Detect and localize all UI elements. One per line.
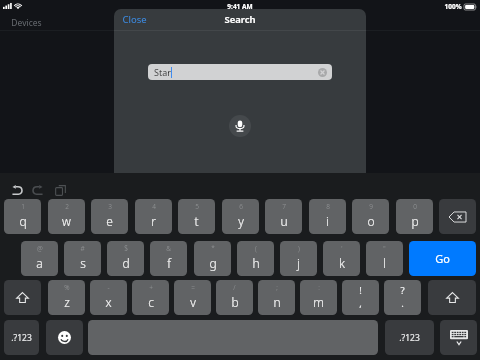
button[interactable]: ; (258, 280, 295, 315)
staticText: .?123 (11, 332, 32, 344)
button[interactable]: 5 (178, 199, 215, 234)
button[interactable]: + (132, 280, 169, 315)
staticText: l (383, 255, 386, 271)
button[interactable]: $ (107, 241, 144, 276)
button[interactable]: ' (323, 241, 360, 276)
staticText: Star (154, 66, 171, 78)
staticText: .?123 (399, 332, 420, 344)
button[interactable]: 4 (135, 199, 172, 234)
staticText: . (401, 297, 404, 310)
button[interactable]: * (194, 241, 231, 276)
staticText: ; (276, 283, 278, 292)
staticText: 4 (152, 202, 156, 211)
button[interactable]: Paste (50, 182, 70, 198)
staticText: n (273, 294, 281, 310)
staticText: 1 (21, 202, 25, 211)
staticText: o (367, 213, 375, 229)
button[interactable]: 6 (222, 199, 259, 234)
staticText: ? (400, 284, 405, 297)
button[interactable]: .?123 (4, 320, 39, 355)
staticText: a (36, 255, 43, 271)
button[interactable]: ) (280, 241, 317, 276)
button[interactable]: : (300, 280, 337, 315)
staticText: u (280, 213, 288, 229)
staticText: 8 (326, 202, 330, 211)
staticText: 0 (413, 202, 417, 211)
staticText: " (383, 244, 386, 253)
staticText: 6 (239, 202, 243, 211)
staticText: Close (122, 13, 147, 26)
button[interactable]: / (216, 280, 253, 315)
staticText: 3 (108, 202, 112, 211)
button[interactable]: Close (114, 10, 155, 29)
button[interactable]: 0 (396, 199, 433, 234)
staticText: @ (37, 244, 43, 253)
staticText: ' (341, 244, 343, 253)
button[interactable]: 3 (91, 199, 128, 234)
button[interactable]: Shift right (428, 280, 476, 315)
staticText: t (194, 213, 199, 229)
button[interactable]: @ (21, 241, 58, 276)
staticText: w (62, 213, 71, 229)
staticText: q (19, 213, 27, 229)
staticText: g (209, 255, 217, 271)
staticText: , (359, 297, 362, 310)
button[interactable]: ( (237, 241, 274, 276)
button[interactable]: ? (384, 280, 421, 315)
staticText: 7 (282, 202, 286, 211)
button[interactable]: Undo (7, 182, 27, 198)
staticText: m (313, 294, 324, 310)
staticText: 9:41 AM (227, 2, 253, 11)
staticText: - (107, 283, 110, 292)
staticText: Search (224, 13, 256, 26)
staticText: j (297, 255, 300, 271)
staticText: v (190, 294, 196, 310)
staticText: h (252, 255, 260, 271)
staticText: * (211, 244, 215, 253)
button[interactable]: Go (409, 241, 476, 276)
staticText: k (339, 255, 345, 271)
button[interactable]: Dictate (229, 115, 251, 137)
staticText: f (167, 255, 171, 271)
staticText: & (166, 244, 171, 253)
button[interactable]: " (366, 241, 403, 276)
button[interactable]: Star (148, 64, 332, 80)
staticText: ) (298, 244, 300, 253)
staticText: + (149, 283, 153, 292)
button[interactable]: - (90, 280, 127, 315)
staticText: x (105, 294, 112, 310)
button[interactable]: 9 (352, 199, 389, 234)
staticText: $ (124, 244, 128, 253)
button[interactable]: & (150, 241, 187, 276)
button[interactable]: # (64, 241, 101, 276)
staticText: e (106, 213, 113, 229)
staticText: 5 (195, 202, 199, 211)
staticText: Devices (11, 17, 42, 29)
button[interactable]: 8 (309, 199, 346, 234)
staticText: z (64, 294, 70, 310)
button[interactable]: = (174, 280, 211, 315)
button[interactable]: 7 (265, 199, 302, 234)
button[interactable]: 1 (4, 199, 41, 234)
button[interactable]: Hide keyboard (440, 320, 477, 355)
button[interactable]: % (48, 280, 85, 315)
staticText: s (80, 255, 86, 271)
button[interactable]: Backspace (439, 199, 476, 234)
staticText: d (122, 255, 130, 271)
staticText: / (233, 283, 236, 292)
staticText: y (238, 213, 244, 229)
button[interactable]: 2 (48, 199, 85, 234)
button[interactable]: .?123 (385, 320, 434, 355)
button[interactable]: Redo (28, 182, 48, 198)
staticText: 2 (65, 202, 69, 211)
staticText: r (151, 213, 156, 229)
staticText: : (318, 283, 320, 292)
staticText: ! (359, 284, 362, 297)
staticText: b (231, 294, 239, 310)
button[interactable]: Shift (4, 280, 41, 315)
button[interactable]: ! (342, 280, 379, 315)
staticText: ( (255, 244, 257, 253)
button[interactable]: Emoji (46, 320, 83, 355)
staticText: 100% (444, 2, 462, 11)
